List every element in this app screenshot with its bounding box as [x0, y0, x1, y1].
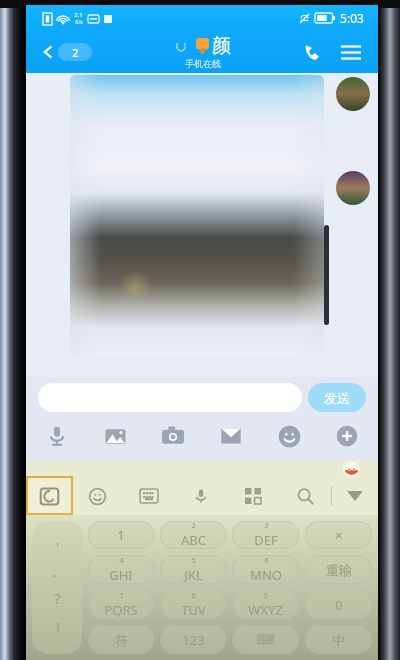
button[interactable]: Call	[294, 33, 332, 71]
staticText: ABC	[181, 531, 206, 549]
button[interactable]: 2	[160, 521, 226, 549]
button[interactable]: 符	[88, 625, 154, 654]
staticText: JKL	[184, 566, 203, 584]
button[interactable]: Camera	[156, 419, 190, 453]
button[interactable]: 0	[305, 590, 372, 619]
staticText: 0	[335, 596, 343, 614]
staticText: DEF	[254, 531, 278, 549]
button[interactable]: Menu	[332, 33, 370, 71]
staticText: 6	[264, 556, 269, 566]
staticText: '	[56, 539, 59, 555]
button[interactable]: Sogou	[28, 479, 70, 513]
staticText: 2	[72, 45, 79, 60]
staticText: 2.1	[74, 11, 83, 19]
staticText: 发送	[324, 390, 350, 406]
button[interactable]: Scan	[227, 477, 279, 515]
button[interactable]: 9	[232, 590, 299, 619]
staticText: GHI	[109, 566, 133, 584]
staticText: TUV	[181, 601, 206, 619]
button[interactable]: 4	[88, 555, 154, 584]
button[interactable]: Punctuation	[32, 521, 82, 654]
staticText: 1	[117, 526, 125, 544]
staticText: ⌨	[256, 632, 275, 647]
staticText: PQRS	[104, 601, 138, 619]
button[interactable]: 中	[305, 625, 372, 654]
button[interactable]: 6	[232, 555, 299, 584]
button[interactable]: Back	[36, 39, 96, 65]
button[interactable]: Avatar	[336, 77, 370, 111]
staticText: WXYZ	[248, 601, 283, 619]
button[interactable]: Emoji	[72, 477, 123, 515]
button[interactable]: Envelope	[214, 419, 248, 453]
button[interactable]: 3	[232, 521, 299, 549]
button[interactable]: 8	[160, 590, 226, 619]
staticText: 符	[115, 632, 128, 648]
staticText: 。	[52, 565, 63, 579]
staticText: K/s	[75, 19, 83, 26]
button[interactable]: 1	[88, 521, 154, 549]
button[interactable]: Emoji	[272, 419, 306, 453]
staticText: 123	[182, 631, 205, 649]
staticText: 2	[191, 521, 196, 531]
button[interactable]: Search	[279, 477, 331, 515]
staticText: 手机在线	[185, 58, 221, 69]
staticText: MNO	[250, 566, 282, 584]
button[interactable]: 发送	[308, 383, 366, 412]
button[interactable]: Voice	[40, 419, 74, 453]
button[interactable]: 5	[160, 555, 226, 584]
button[interactable]: More	[330, 419, 364, 453]
staticText: 中	[332, 632, 345, 648]
button[interactable]: 123	[160, 625, 226, 654]
staticText: 颜	[212, 34, 231, 58]
staticText: 5	[191, 556, 196, 566]
button[interactable]: 重输	[305, 555, 372, 584]
staticText: 3	[264, 521, 269, 531]
staticText: ×	[335, 526, 343, 544]
button[interactable]: Message input	[38, 383, 302, 412]
button[interactable]: Voice input	[175, 477, 227, 515]
staticText: 8	[191, 591, 196, 601]
button[interactable]: ×	[305, 521, 372, 549]
staticText: 7	[119, 591, 124, 601]
staticText: 重输	[326, 562, 352, 578]
button[interactable]: 7	[88, 590, 154, 619]
button[interactable]: Picture	[98, 419, 132, 453]
button[interactable]: Keyboard layout	[123, 477, 175, 515]
button[interactable]: ⌨	[232, 625, 299, 654]
staticText: ?	[54, 589, 61, 608]
staticText: 5:03	[340, 10, 364, 26]
staticText: 9	[263, 591, 268, 601]
staticText: !	[56, 618, 60, 636]
button[interactable]: Avatar	[336, 171, 370, 205]
staticText: 4	[119, 556, 124, 566]
button[interactable]: Hide keyboard	[332, 477, 378, 515]
